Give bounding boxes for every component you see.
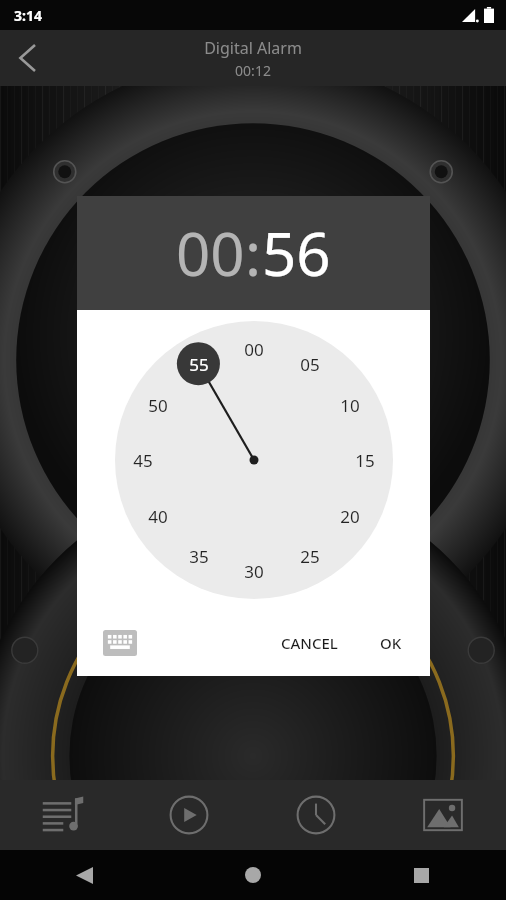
staticText: 15 (355, 449, 375, 472)
button[interactable]: Alarm (252, 780, 379, 850)
button[interactable]: Playlist (0, 780, 126, 850)
button[interactable]: 00 (176, 212, 245, 294)
button[interactable]: Recent apps (337, 850, 506, 900)
button[interactable]: 00 (115, 321, 393, 599)
staticText: 56 (262, 212, 331, 294)
staticText: 00 (176, 212, 245, 294)
staticText: 10 (340, 394, 360, 417)
staticText: 55 (189, 353, 209, 376)
staticText: 50 (148, 394, 168, 417)
staticText: 35 (189, 545, 209, 568)
button[interactable]: 56 (262, 212, 331, 294)
button[interactable]: Back (0, 30, 56, 86)
staticText: 25 (300, 545, 320, 568)
staticText: Digital Alarm (204, 37, 302, 59)
staticText: : (245, 212, 262, 294)
staticText: CANCEL (281, 633, 338, 653)
button[interactable]: Gallery (379, 780, 506, 850)
staticText: 3:14 (14, 6, 42, 25)
staticText: 30 (244, 560, 264, 583)
staticText: 00 (244, 338, 264, 361)
staticText: 00:12 (235, 61, 271, 80)
button[interactable]: Switch to keyboard input (103, 630, 137, 656)
button[interactable]: Play (126, 780, 252, 850)
button[interactable]: CANCEL (271, 625, 348, 661)
staticText: 20 (340, 505, 360, 528)
button[interactable]: Back (0, 850, 168, 900)
staticText: 45 (133, 449, 153, 472)
staticText: 05 (300, 353, 320, 376)
staticText: 40 (148, 505, 168, 528)
staticText: OK (380, 633, 402, 653)
button[interactable]: Home (168, 850, 337, 900)
button[interactable]: OK (370, 625, 412, 661)
